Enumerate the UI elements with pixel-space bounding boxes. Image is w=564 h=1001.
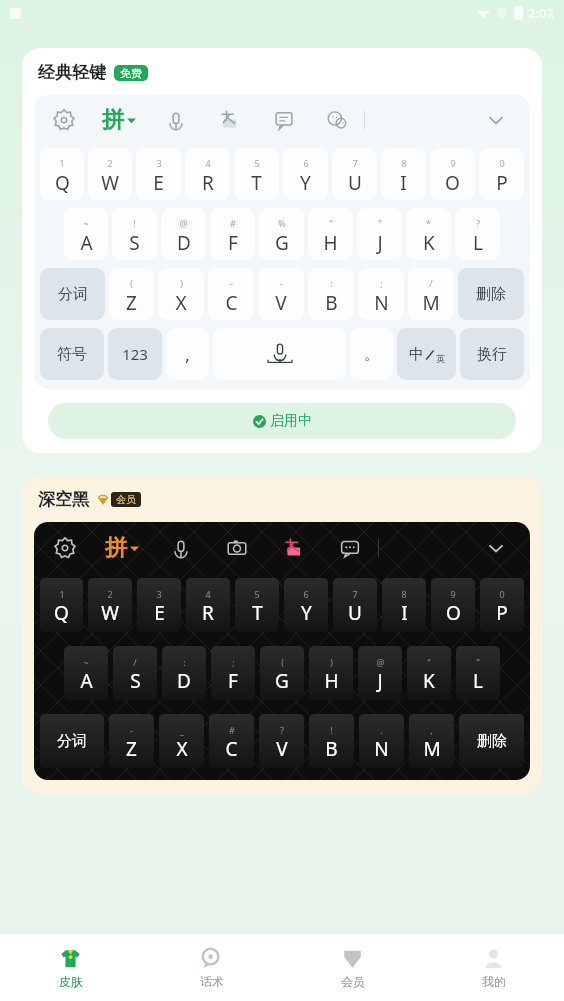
button[interactable]: 分词 [40,268,105,320]
staticText: ) [180,277,183,289]
button[interactable]: 6 [284,578,328,632]
staticText: F [228,230,238,256]
button[interactable]: 会员 [282,934,423,1001]
button[interactable]: . [359,714,404,768]
button[interactable]: “ [308,208,353,260]
button[interactable]: 1 [40,148,84,200]
button[interactable]: Collapse keyboard [470,522,522,574]
button[interactable]: ( [109,268,154,320]
button[interactable]: _ [159,714,204,768]
button[interactable]: # [210,208,255,260]
button[interactable]: / [113,646,157,700]
button[interactable]: , [409,714,454,768]
button[interactable]: 6 [283,148,328,200]
button[interactable]: 删除 [459,714,524,768]
button[interactable]: Phrases [258,95,310,145]
button[interactable]: 拼 [88,95,150,145]
button[interactable]: ! [309,714,354,768]
button[interactable]: 分词 [40,714,104,768]
button[interactable]: : [162,646,206,700]
button[interactable]: 9 [431,578,475,632]
button[interactable]: 4 [185,148,230,200]
button[interactable]: ? [259,714,304,768]
button[interactable]: 2 [88,148,132,200]
button[interactable]: 符号 [40,328,104,380]
staticText: G [275,230,289,256]
staticText: K [423,230,435,256]
staticText: Q [54,600,69,626]
button[interactable]: Camera [208,522,266,574]
button[interactable]: ” [456,646,500,700]
button[interactable]: 8 [381,148,426,200]
button[interactable]: @ [161,208,206,260]
button[interactable]: ; [211,646,255,700]
button[interactable]: 深空黑 [22,475,542,794]
staticText: J [377,230,383,256]
button[interactable]: # [209,714,254,768]
button[interactable]: 0 [480,578,524,632]
button[interactable]: 123 [108,328,162,380]
staticText: 0 [499,588,505,600]
button[interactable]: ~ [64,646,108,700]
button[interactable]: Voice input [154,522,208,574]
button[interactable]: ; [358,268,404,320]
button[interactable]: Settings [40,95,88,145]
staticText: 4 [205,157,211,169]
button[interactable]: 5 [234,148,279,200]
button[interactable]: 话术 [141,934,282,1001]
button[interactable]: “ [407,646,451,700]
button[interactable]: 。 [350,328,393,380]
staticText: U [348,170,362,196]
button[interactable]: Space / voice [213,328,346,380]
button[interactable]: * [406,208,451,260]
staticText: - [230,277,233,289]
button[interactable]: 1 [40,578,83,632]
staticText: 6 [303,157,309,169]
button[interactable]: : [308,268,354,320]
button[interactable]: Settings [40,522,90,574]
button[interactable]: - [258,268,304,320]
button[interactable]: 拼 [90,522,154,574]
button[interactable]: 3 [137,578,181,632]
button[interactable]: 7 [332,148,377,200]
button[interactable]: 中 [397,328,456,380]
staticText: R [202,600,214,626]
button[interactable]: ” [357,208,402,260]
button[interactable]: 8 [382,578,426,632]
button[interactable]: % [259,208,304,260]
staticText: 深空黑 [38,489,89,510]
button[interactable]: 友脚 [266,522,322,574]
button[interactable]: 5 [235,578,279,632]
button[interactable]: Voice input [150,95,202,145]
button[interactable]: 删除 [458,268,524,320]
button[interactable]: - [208,268,254,320]
button[interactable]: 9 [430,148,475,200]
button[interactable]: , [166,328,209,380]
button[interactable]: WeChat [310,95,364,145]
button[interactable]: More [322,522,378,574]
button[interactable]: 经典轻键 [22,48,542,453]
button[interactable]: ! [112,208,157,260]
button[interactable]: 0 [479,148,524,200]
button[interactable]: / [408,268,454,320]
button[interactable]: 皮肤 [0,934,141,1001]
staticText: 删除 [477,732,507,751]
button[interactable]: 3 [136,148,181,200]
button[interactable]: 2 [88,578,132,632]
button[interactable]: ) [309,646,353,700]
button[interactable]: 4 [186,578,230,632]
staticText: 7 [352,588,358,600]
button[interactable]: 启用中 [48,403,516,439]
button[interactable]: Collapse keyboard [470,95,522,145]
button[interactable]: ? [455,208,500,260]
button[interactable]: - [109,714,154,768]
button[interactable]: 换行 [460,328,524,380]
button[interactable]: ( [260,646,304,700]
button[interactable]: @ [358,646,402,700]
staticText: V [276,736,288,762]
button[interactable]: 我的 [423,934,564,1001]
button[interactable]: 7 [333,578,377,632]
button[interactable]: 友脚 [202,95,258,145]
button[interactable]: ~ [64,208,108,260]
button[interactable]: ) [158,268,204,320]
